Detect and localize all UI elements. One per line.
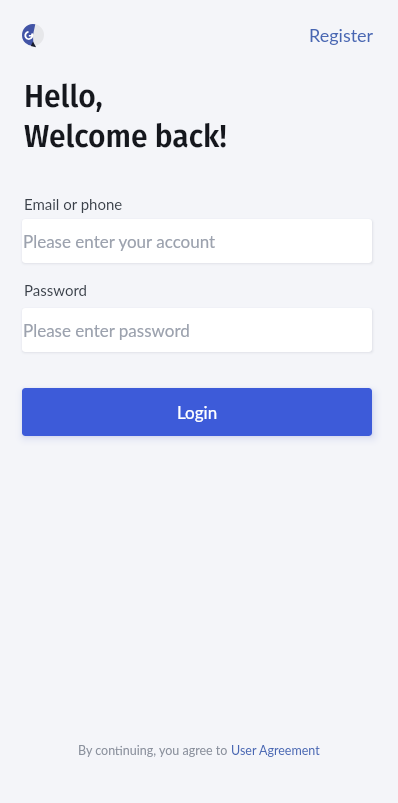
staticText: Welcome back! [24,119,227,155]
button[interactable]: Please enter your account [22,219,372,263]
staticText: Please enter your account [23,231,216,251]
button[interactable]: Login [22,388,372,436]
staticText: Email or phone [24,195,123,213]
staticText: Hello, [24,79,103,115]
staticText: By continuing, you agree to [78,743,231,758]
staticText: Password [24,281,87,299]
button[interactable]: User Agreement [231,743,320,758]
button[interactable]: Register [309,24,374,46]
staticText: Please enter password [23,320,190,340]
staticText: Login [177,402,218,422]
button[interactable]: Please enter password [22,308,372,352]
staticText: Register [309,24,374,46]
